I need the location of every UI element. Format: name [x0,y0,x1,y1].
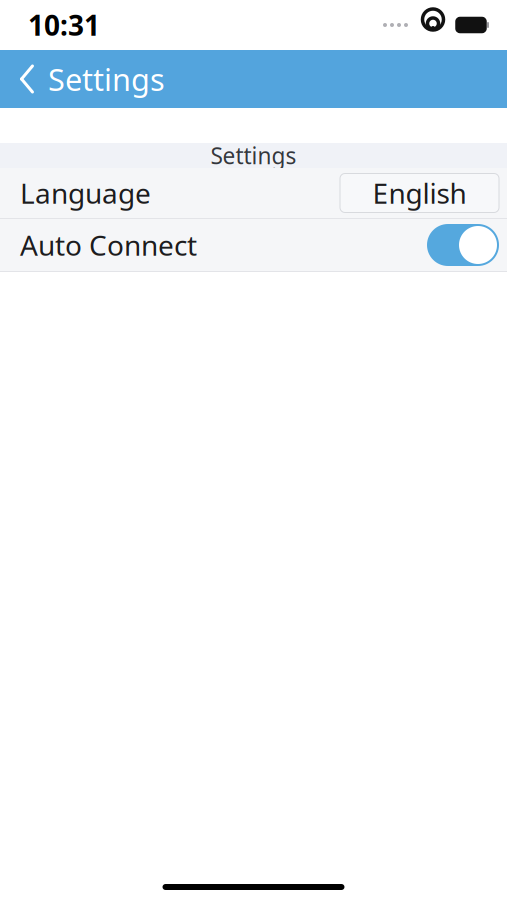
button[interactable]: English [340,173,499,212]
staticText: 10:31 [28,6,100,44]
staticText: Settings [48,59,165,99]
staticText: Language [20,174,151,212]
button[interactable]: Settings [0,47,165,111]
button[interactable]: Auto Connect [427,224,499,266]
staticText: Auto Connect [20,226,197,264]
staticText: English [372,174,466,212]
staticText: Settings [210,140,296,170]
